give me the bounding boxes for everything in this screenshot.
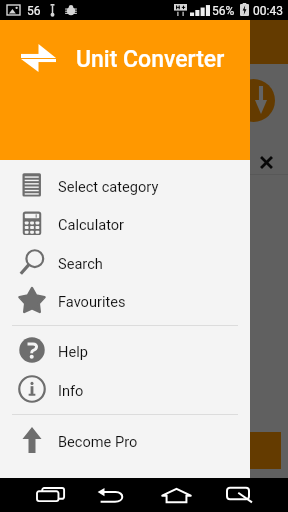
- button[interactable]: Select category: [0, 166, 250, 204]
- staticText: Favourites: [58, 293, 126, 310]
- button[interactable]: Home: [152, 478, 200, 512]
- button[interactable]: Help: [0, 331, 250, 369]
- button[interactable]: Back: [88, 478, 136, 512]
- staticText: Help: [58, 343, 88, 360]
- button[interactable]: Search: [0, 243, 250, 281]
- button[interactable]: Clear: [253, 149, 277, 173]
- button[interactable]: Favourites: [0, 281, 250, 319]
- staticText: Unit Converter: [76, 46, 225, 73]
- button[interactable]: Recent apps: [27, 478, 75, 512]
- staticText: 56%: [212, 4, 235, 18]
- button[interactable]: Calculator: [0, 204, 250, 242]
- button[interactable]: Info: [0, 370, 250, 408]
- button[interactable]: Swap units: [232, 79, 275, 122]
- button[interactable]: Menu: [215, 478, 263, 512]
- staticText: 00:43: [253, 4, 283, 18]
- staticText: Info: [58, 382, 84, 399]
- staticText: Select category: [58, 178, 159, 195]
- staticText: Calculator: [58, 216, 125, 233]
- staticText: Become Pro: [58, 433, 138, 450]
- button[interactable]: Become Pro: [0, 421, 250, 459]
- staticText: Search: [58, 255, 103, 272]
- staticText: 56: [27, 4, 41, 18]
